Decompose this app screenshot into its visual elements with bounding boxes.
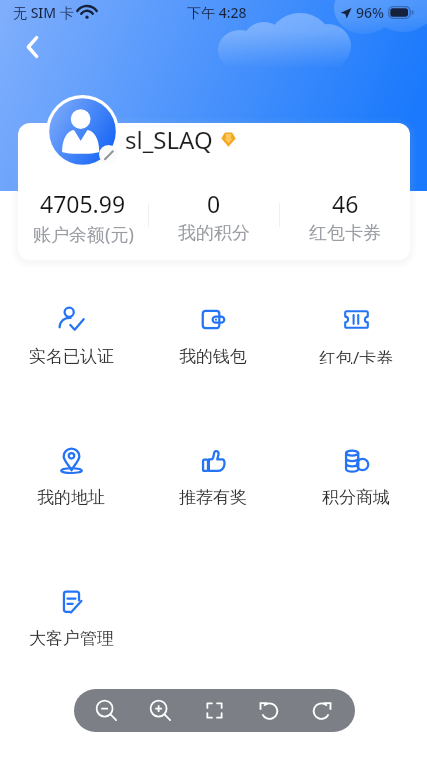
button[interactable]: 大客户管理 (23, 582, 119, 646)
staticText: 账户余额(元) (33, 222, 134, 247)
staticText: 大客户管理 (29, 628, 114, 646)
button[interactable]: 4705.99 (18, 188, 148, 247)
staticText: 红包卡券 (309, 222, 381, 245)
button[interactable]: 推荐有奖 (165, 441, 261, 505)
staticText: sl_SLAQ (125, 123, 213, 156)
button[interactable]: Rotate right (301, 689, 344, 732)
button[interactable]: 积分商城 (308, 441, 404, 505)
staticText: 红包/卡券 (319, 346, 394, 364)
button[interactable]: Zoom out (85, 689, 128, 732)
staticText: 无 SIM 卡 (13, 3, 74, 22)
button[interactable]: Fit to screen (193, 689, 236, 732)
button[interactable]: Back (12, 26, 54, 68)
staticText: 我的钱包 (179, 346, 247, 364)
button[interactable]: 我的钱包 (165, 300, 261, 364)
staticText: 4705.99 (40, 188, 126, 219)
staticText: 我的地址 (37, 487, 105, 505)
staticText: 46 (332, 188, 359, 219)
button[interactable]: 实名已认证 (23, 300, 119, 364)
staticText: 96% (356, 3, 384, 22)
button[interactable]: Edit avatar (99, 145, 118, 164)
button[interactable]: 红包/卡券 (308, 300, 404, 364)
button[interactable]: Zoom in (139, 689, 182, 732)
button[interactable]: 0 (149, 188, 279, 245)
button[interactable]: 46 (280, 188, 410, 245)
button[interactable]: Rotate left (247, 689, 290, 732)
staticText: 0 (207, 188, 221, 219)
staticText: 推荐有奖 (179, 487, 247, 505)
staticText: 下午 4:28 (187, 3, 247, 22)
staticText: 积分商城 (322, 487, 390, 505)
staticText: 我的积分 (178, 222, 250, 245)
staticText: 实名已认证 (29, 346, 114, 364)
button[interactable]: 我的地址 (23, 441, 119, 505)
